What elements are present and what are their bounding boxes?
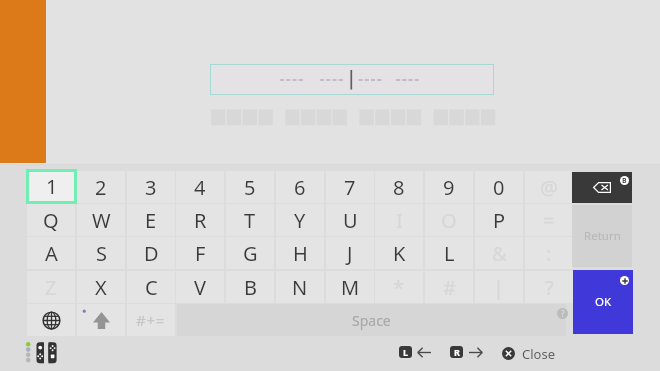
button[interactable] [210,64,494,95]
staticText: K [393,240,406,267]
button[interactable]: #+= [127,304,175,336]
button[interactable]: T [226,204,274,236]
button[interactable]: 0 [475,171,523,203]
button[interactable]: R [176,204,224,236]
button[interactable]: Next [450,346,483,359]
button[interactable]: U [326,204,374,236]
staticText: 5 [244,174,256,201]
button[interactable]: L [425,237,473,269]
staticText: R [454,346,460,358]
staticText: J [347,240,353,267]
staticText: R [194,207,207,234]
button[interactable]: E [127,204,175,236]
staticText: M [341,274,360,301]
staticText: O [441,207,457,234]
button[interactable]: 8 [375,171,423,203]
button[interactable]: C [127,271,175,303]
staticText: # [443,274,456,301]
button[interactable]: OK [573,270,633,334]
button[interactable]: 4 [176,171,224,203]
button[interactable]: A [27,237,75,269]
button[interactable]: G [226,237,274,269]
staticText: ? [545,274,554,301]
staticText: 9 [443,174,455,201]
button[interactable]: Shift [77,304,125,336]
staticText: | [493,274,505,301]
button[interactable]: 2 [77,171,125,203]
staticText: L [444,240,455,267]
button[interactable]: M [326,271,374,303]
staticText: 2 [95,174,107,201]
button[interactable]: B [226,271,274,303]
button[interactable]: 1 [27,171,75,203]
staticText: D [144,240,159,267]
staticText: T [244,207,256,234]
button[interactable]: Y [276,204,324,236]
button[interactable]: Return [572,205,632,267]
button[interactable]: 5 [226,171,274,203]
button[interactable]: K [375,237,423,269]
button[interactable]: 9 [425,171,473,203]
button[interactable]: Q [27,204,75,236]
staticText: 4 [194,174,206,201]
staticText: V [194,274,206,301]
staticText: W [92,207,111,234]
staticText: P [493,207,506,234]
button[interactable]: Backspace [572,172,632,203]
staticText: ? [561,308,565,319]
button[interactable]: F [176,237,224,269]
button[interactable]: W [77,204,125,236]
button[interactable]: N [276,271,324,303]
staticText: Close [522,345,555,361]
button[interactable]: 6 [276,171,324,203]
staticText: : [546,240,552,267]
button[interactable]: Language [27,304,75,336]
staticText: Y [294,207,306,234]
button[interactable]: Controllers [24,340,60,366]
staticText: Q [43,207,59,234]
staticText: #+= [136,310,166,330]
button[interactable]: Previous [399,346,432,359]
button[interactable]: Space [177,304,566,336]
staticText: N [292,274,308,301]
staticText: C [145,274,158,301]
button[interactable]: 3 [127,171,175,203]
staticText: Space [352,311,391,330]
button[interactable]: P [475,204,523,236]
staticText: = [543,207,555,234]
button[interactable]: X [77,271,125,303]
button[interactable]: @ [525,171,573,203]
staticText: B [622,176,627,185]
staticText: U [343,207,358,234]
staticText: A [45,240,58,267]
staticText: I [396,207,403,234]
staticText: H [293,240,308,267]
staticText: 1 [45,174,57,201]
staticText: 0 [493,174,505,201]
staticText: X [95,274,107,301]
staticText: & [492,240,507,267]
staticText: @ [540,174,558,201]
button[interactable]: D [127,237,175,269]
button[interactable]: 7 [326,171,374,203]
button[interactable]: Help [557,308,568,319]
button[interactable]: V [176,271,224,303]
button[interactable]: S [77,237,125,269]
staticText: Z [45,274,57,301]
staticText: F [195,240,206,267]
staticText: 6 [294,174,306,201]
button[interactable]: H [276,237,324,269]
button[interactable]: Close [502,345,555,361]
staticText: L [403,346,409,358]
button[interactable]: J [326,237,374,269]
